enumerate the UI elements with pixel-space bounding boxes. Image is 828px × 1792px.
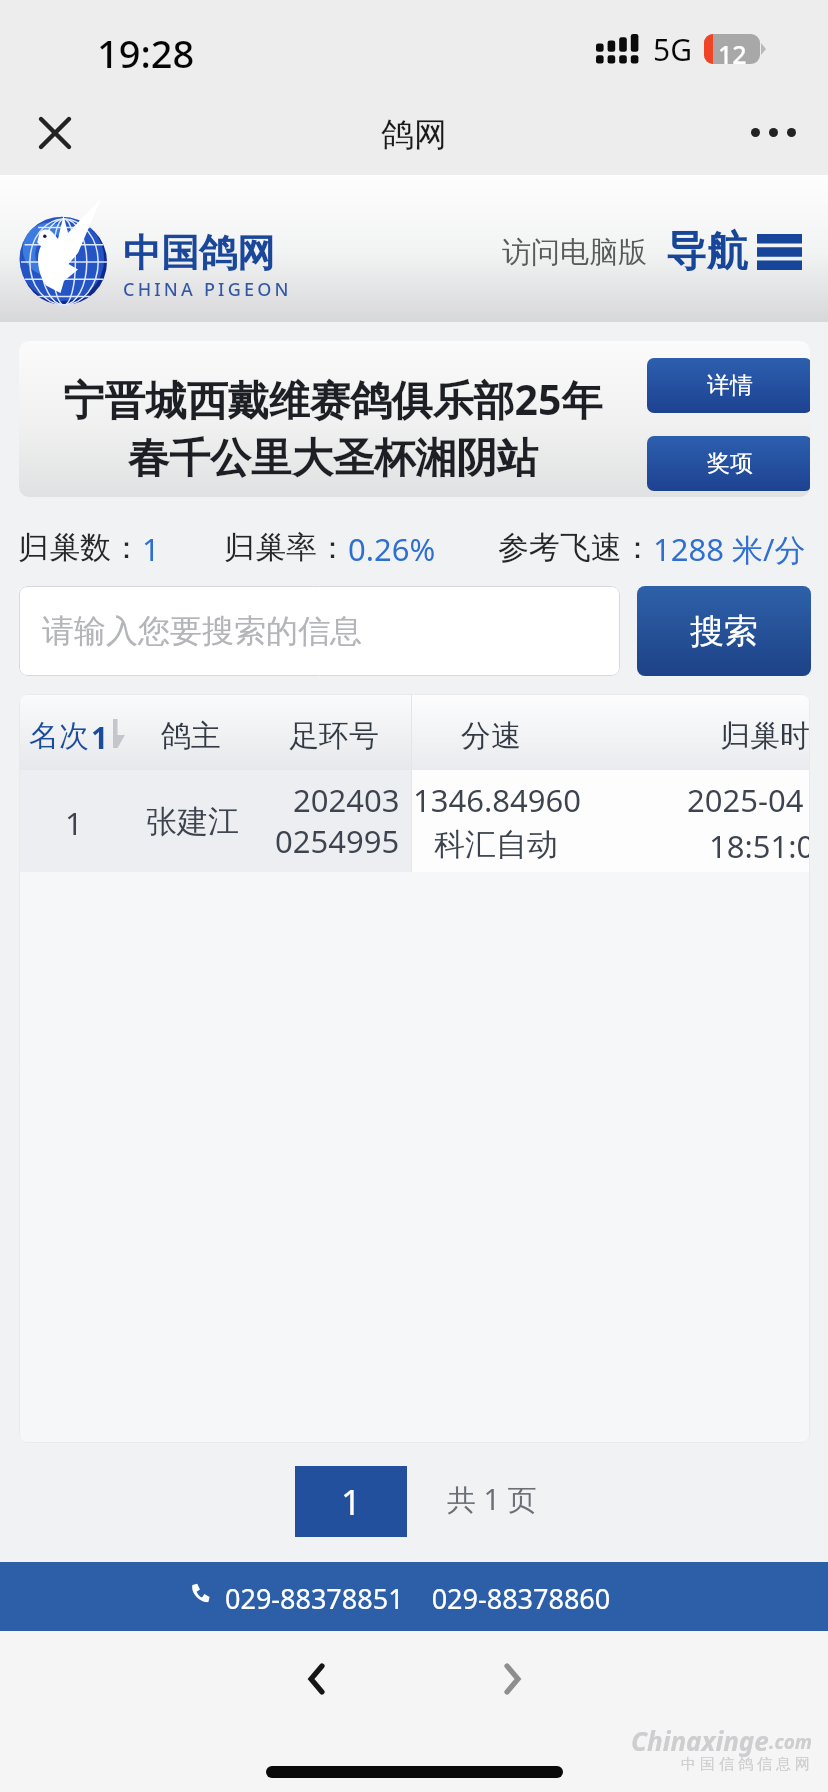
staticText: 宁晋城西戴维赛鸽俱乐部25年春千公里大圣杯湘阴站 <box>57 371 609 484</box>
button[interactable]: Close <box>25 103 84 162</box>
staticText: 19:28 <box>97 27 195 79</box>
button[interactable]: Forward <box>477 1644 547 1714</box>
staticText: 0.26% <box>348 528 436 570</box>
staticText: 1346.84960 <box>413 779 581 821</box>
staticText: 029-88378851 029-88378860 <box>225 1580 611 1617</box>
staticText: 分速 <box>461 717 521 755</box>
staticText: 1288 米/分 <box>653 528 806 570</box>
button[interactable]: 搜索 <box>637 586 811 676</box>
button[interactable]: 请输入您要搜索的信息 <box>19 586 620 676</box>
staticText: 2025-04 <box>687 779 804 821</box>
staticText: 张建江 <box>146 802 239 841</box>
staticText: 1 <box>142 528 160 570</box>
button[interactable]: 详情 <box>647 358 810 413</box>
staticText: 202403 <box>293 779 400 821</box>
staticText: 1 <box>91 717 109 758</box>
staticText: 归巢率： <box>224 528 348 567</box>
staticText: 共 1 页 <box>447 1479 537 1519</box>
staticText: 1 <box>65 802 83 844</box>
staticText: 科汇自动 <box>434 825 558 864</box>
staticText: 奖项 <box>707 449 753 478</box>
button[interactable] <box>19 770 810 872</box>
staticText: CHINA PIGEON <box>123 277 292 302</box>
staticText: 搜索 <box>690 610 758 653</box>
staticText: 归巢数： <box>18 528 142 567</box>
staticText: 鸽主 <box>161 717 221 755</box>
staticText: 请输入您要搜索的信息 <box>42 611 362 651</box>
staticText: 5G <box>653 29 692 70</box>
staticText: 导航 <box>666 226 748 278</box>
staticText: 详情 <box>707 371 753 400</box>
staticText: .com <box>769 1729 812 1755</box>
button[interactable]: 访问电脑版 <box>502 234 647 271</box>
button[interactable]: Back <box>281 1644 351 1714</box>
staticText: 归巢时间 <box>720 717 810 755</box>
staticText: Chinaxinge <box>631 1723 769 1758</box>
staticText: 中国信鸽信息网 <box>679 1755 812 1774</box>
staticText: 中国鸽网 <box>123 229 275 277</box>
staticText: 18:51:07 <box>709 825 810 867</box>
button[interactable]: More options <box>738 103 808 162</box>
button[interactable]: Navigation menu <box>666 226 802 278</box>
staticText: 1 <box>341 1478 362 1526</box>
staticText: 鸽网 <box>0 114 828 156</box>
staticText: 12 <box>718 37 747 64</box>
staticText: 0254995 <box>275 820 400 862</box>
staticText: 足环号 <box>289 717 379 755</box>
button[interactable]: 1 <box>295 1466 407 1537</box>
staticText: 参考飞速： <box>498 528 653 567</box>
button[interactable]: 奖项 <box>647 436 810 491</box>
staticText: 名次 <box>29 717 89 755</box>
